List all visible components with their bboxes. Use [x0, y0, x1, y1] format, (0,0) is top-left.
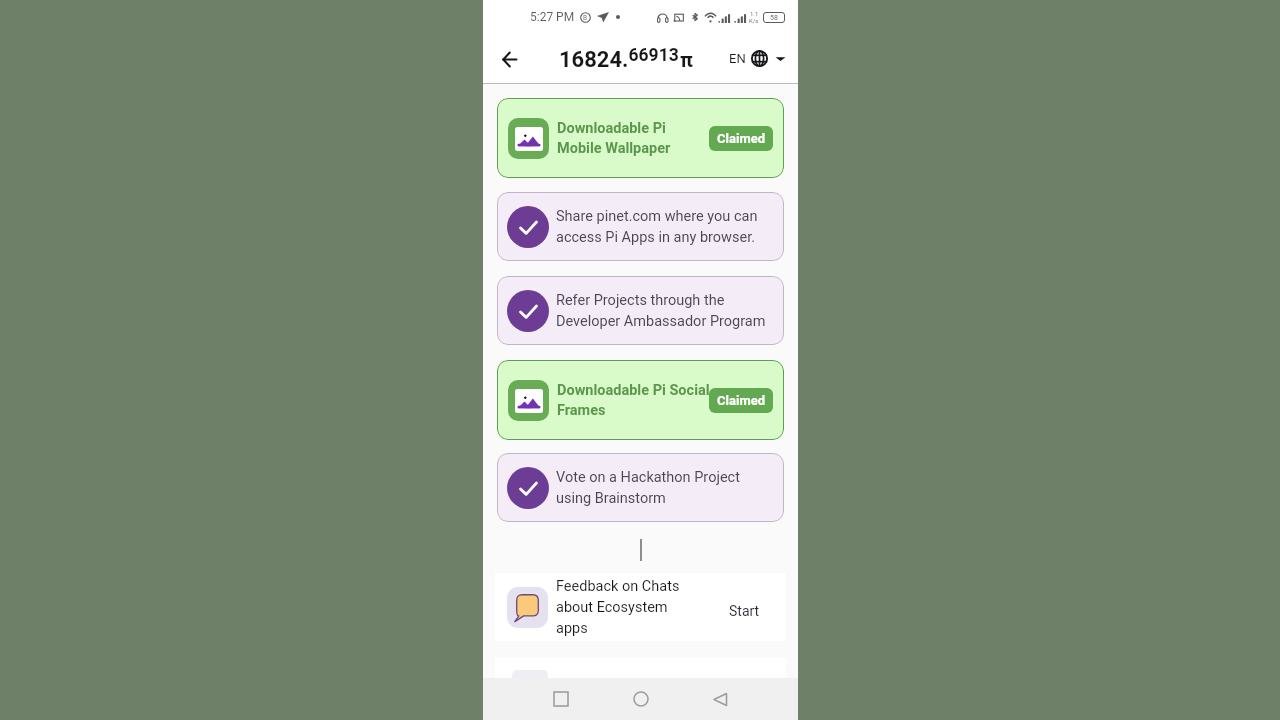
button[interactable]: Back [706, 685, 734, 713]
button[interactable]: Feedback on Chats [495, 573, 786, 641]
button[interactable]: Downloadable Pi Social [497, 360, 784, 440]
staticText: EN [729, 51, 746, 66]
staticText: Mobile Wallpaper [557, 140, 671, 157]
staticText: Claimed [717, 131, 765, 146]
staticText: Developer Ambassador Program [556, 313, 766, 330]
button[interactable]: Refer Projects through the [497, 276, 784, 345]
staticText: Frames [557, 402, 606, 419]
staticText: K/s [749, 17, 759, 24]
staticText: B [583, 14, 588, 22]
staticText: 5:27 PM [530, 10, 575, 24]
staticText: Downloadable Pi [557, 120, 666, 137]
staticText: access Pi Apps in any browser. [556, 229, 756, 246]
button[interactable]: Start [721, 594, 786, 620]
staticText: 58 [770, 14, 778, 22]
button[interactable]: Claimed [709, 388, 773, 413]
button[interactable]: EN [729, 50, 786, 67]
staticText: Vote on a Hackathon Project [556, 469, 740, 486]
button[interactable]: Claimed [709, 126, 773, 151]
staticText: Downloadable Pi Social [557, 382, 710, 399]
staticText: 16824.66913 π [559, 45, 693, 72]
button[interactable]: Share pinet.com where you can [497, 192, 784, 261]
button[interactable]: Home [627, 685, 655, 713]
button[interactable]: Vote on a Hackathon Project [497, 453, 784, 522]
staticText: Feedback on Chats [556, 578, 680, 595]
staticText: Share pinet.com where you can [556, 208, 758, 225]
button[interactable]: Downloadable Pi [497, 98, 784, 178]
staticText: about Ecosystem [556, 599, 668, 616]
staticText: Start [729, 603, 760, 619]
staticText: using Brainstorm [556, 490, 666, 507]
button[interactable]: Back [494, 44, 524, 74]
staticText: Refer Projects through the [556, 292, 725, 309]
staticText: Claimed [717, 393, 765, 408]
staticText: 1.1 [750, 10, 759, 17]
button[interactable]: Recents [547, 685, 575, 713]
staticText: apps [556, 620, 588, 637]
